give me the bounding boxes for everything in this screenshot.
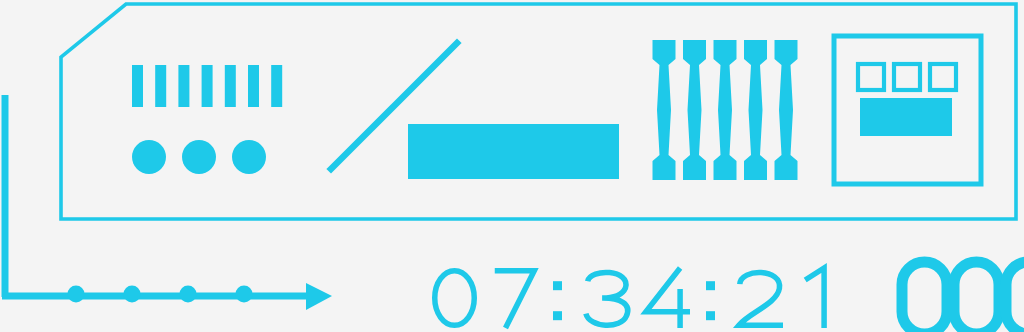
button[interactable]: Process timeline infographic (0, 0, 1024, 332)
